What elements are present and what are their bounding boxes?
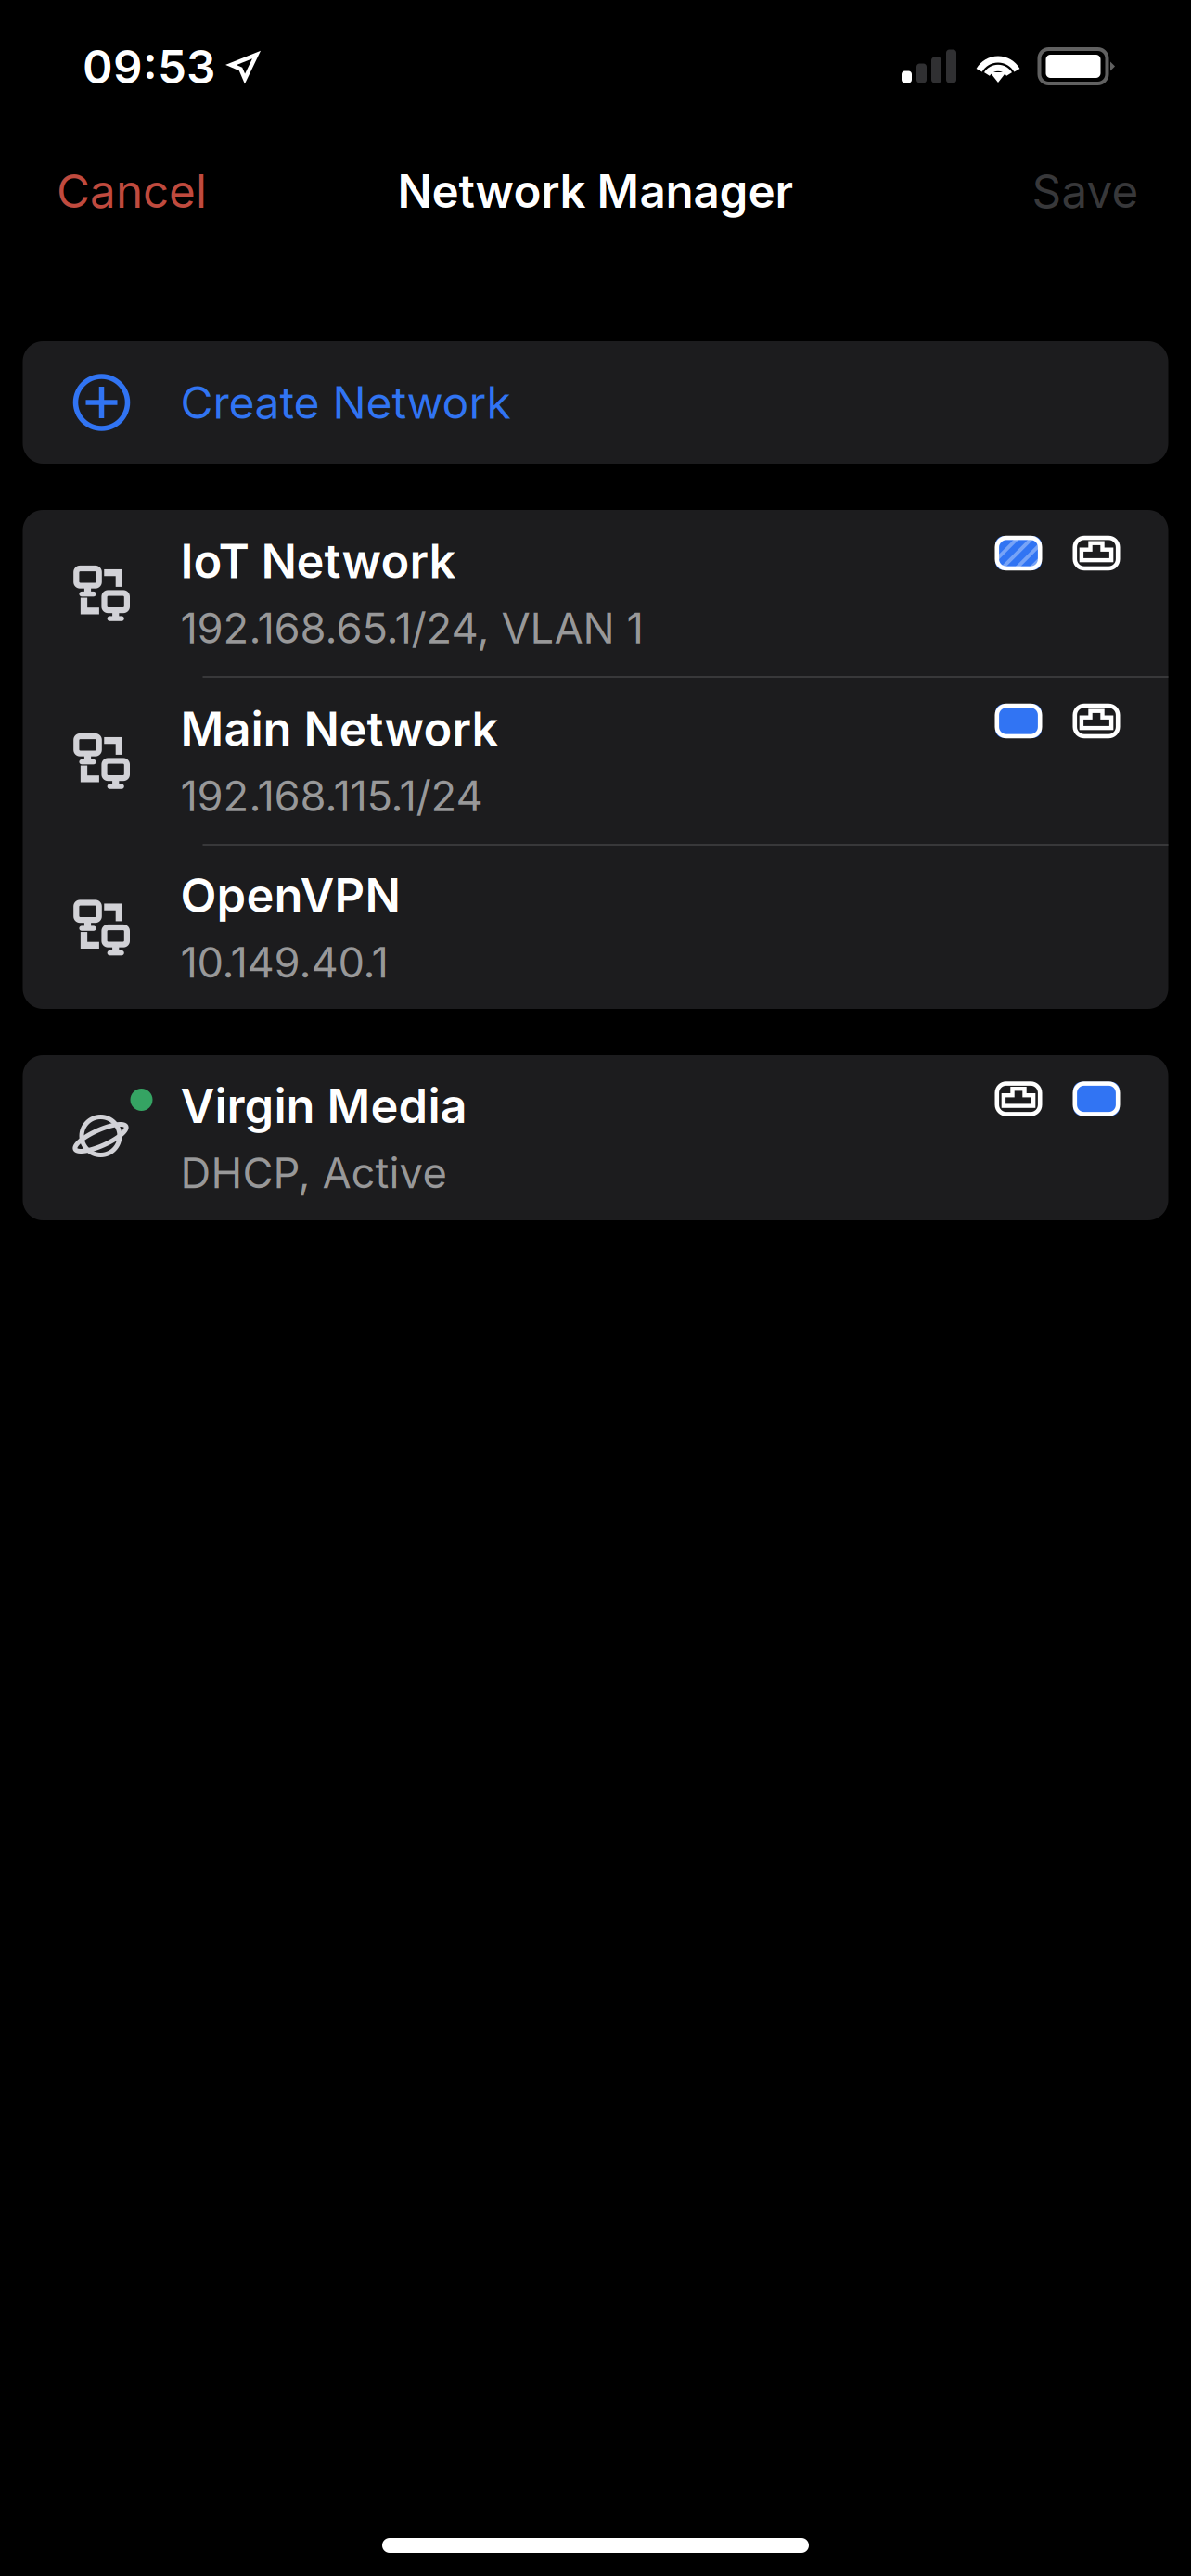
button[interactable]: Virgin Media	[23, 1055, 1168, 1220]
button[interactable]: IoT Network	[23, 510, 1168, 676]
staticText: Create Network	[180, 376, 511, 429]
button[interactable]: Main Network	[23, 678, 1168, 844]
staticText: Virgin Media	[180, 1077, 467, 1134]
staticText: 192.168.65.1/24, VLAN 1	[180, 602, 643, 653]
staticText: DHCP, Active	[180, 1147, 447, 1198]
button[interactable]: OpenVPN	[23, 846, 1168, 1009]
staticText: OpenVPN	[180, 867, 400, 924]
staticText: 09:53	[83, 39, 215, 94]
button[interactable]: Create Network	[23, 341, 1168, 464]
staticText: IoT Network	[180, 533, 456, 589]
staticText: Network Manager	[397, 163, 794, 219]
staticText: 192.168.115.1/24	[180, 770, 483, 821]
button[interactable]: Save	[1000, 134, 1191, 248]
button[interactable]: Cancel	[12, 134, 238, 248]
staticText: 10.149.40.1	[180, 937, 388, 988]
staticText: Main Network	[180, 700, 499, 757]
staticText: Cancel	[57, 163, 207, 219]
staticText: Save	[1032, 163, 1139, 219]
